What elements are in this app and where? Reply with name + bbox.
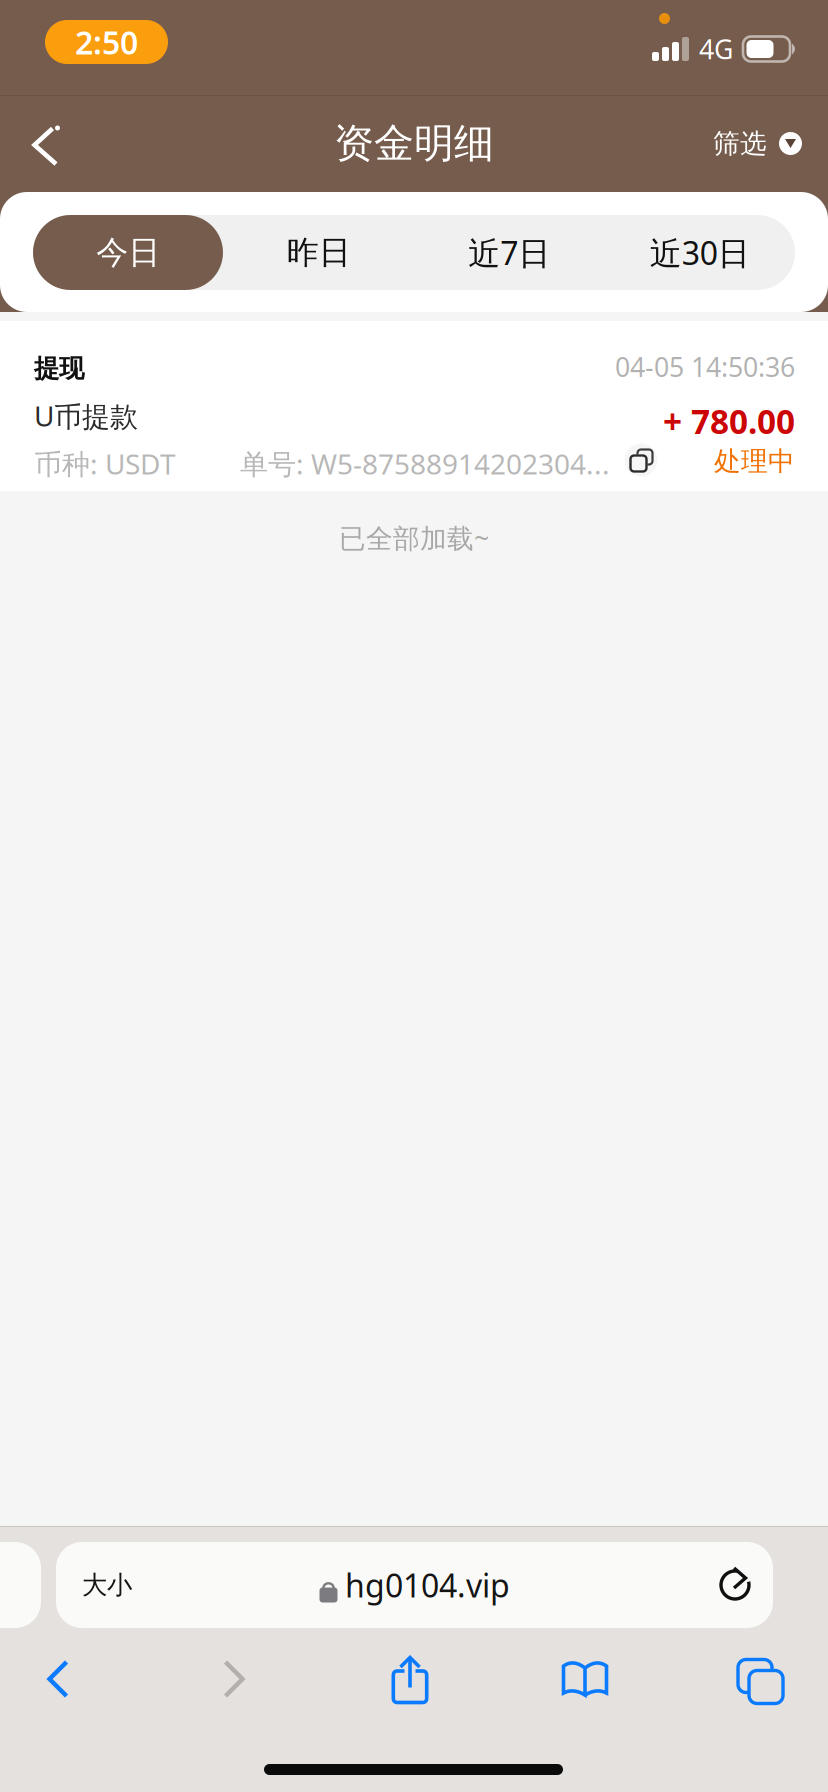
button[interactable]: 返回: [0, 95, 100, 192]
staticText: U币提款: [34, 397, 138, 434]
staticText: 资金明细: [334, 119, 494, 168]
button[interactable]: 今日: [33, 215, 223, 290]
button[interactable]: 分享: [352, 1645, 468, 1715]
staticText: 近30日: [650, 231, 750, 274]
staticText: 04-05 14:50:36: [615, 349, 795, 384]
button[interactable]: 前进: [176, 1644, 292, 1714]
staticText: 昨日: [287, 233, 351, 272]
staticText: 4G: [699, 31, 733, 67]
button[interactable]: 复制单号: [621, 440, 661, 480]
button[interactable]: 近7日: [414, 215, 604, 290]
button[interactable]: 昨日: [223, 215, 414, 290]
staticText: 单号: W5-87588914202304...: [240, 445, 610, 482]
staticText: 币种: USDT: [34, 445, 176, 482]
button[interactable]: 标签页: [698, 1642, 814, 1712]
staticText: 提现: [34, 353, 84, 384]
button[interactable]: 大小: [56, 1542, 773, 1628]
staticText: hg0104.vip: [345, 1564, 510, 1606]
staticText: 已全部加载~: [339, 520, 489, 555]
button[interactable]: 后退: [0, 1644, 116, 1714]
staticText: 今日: [96, 233, 160, 272]
button[interactable]: 提现: [0, 321, 828, 491]
button[interactable]: 筛选: [713, 95, 828, 192]
button[interactable]: 书签: [527, 1643, 643, 1713]
staticText: 筛选: [713, 127, 767, 160]
staticText: 近7日: [468, 231, 550, 274]
staticText: 2:50: [75, 21, 138, 63]
staticText: 处理中: [714, 445, 795, 478]
button[interactable]: 近30日: [604, 215, 795, 290]
staticText: + 780.00: [663, 399, 795, 443]
staticText: 大小: [82, 1569, 132, 1600]
